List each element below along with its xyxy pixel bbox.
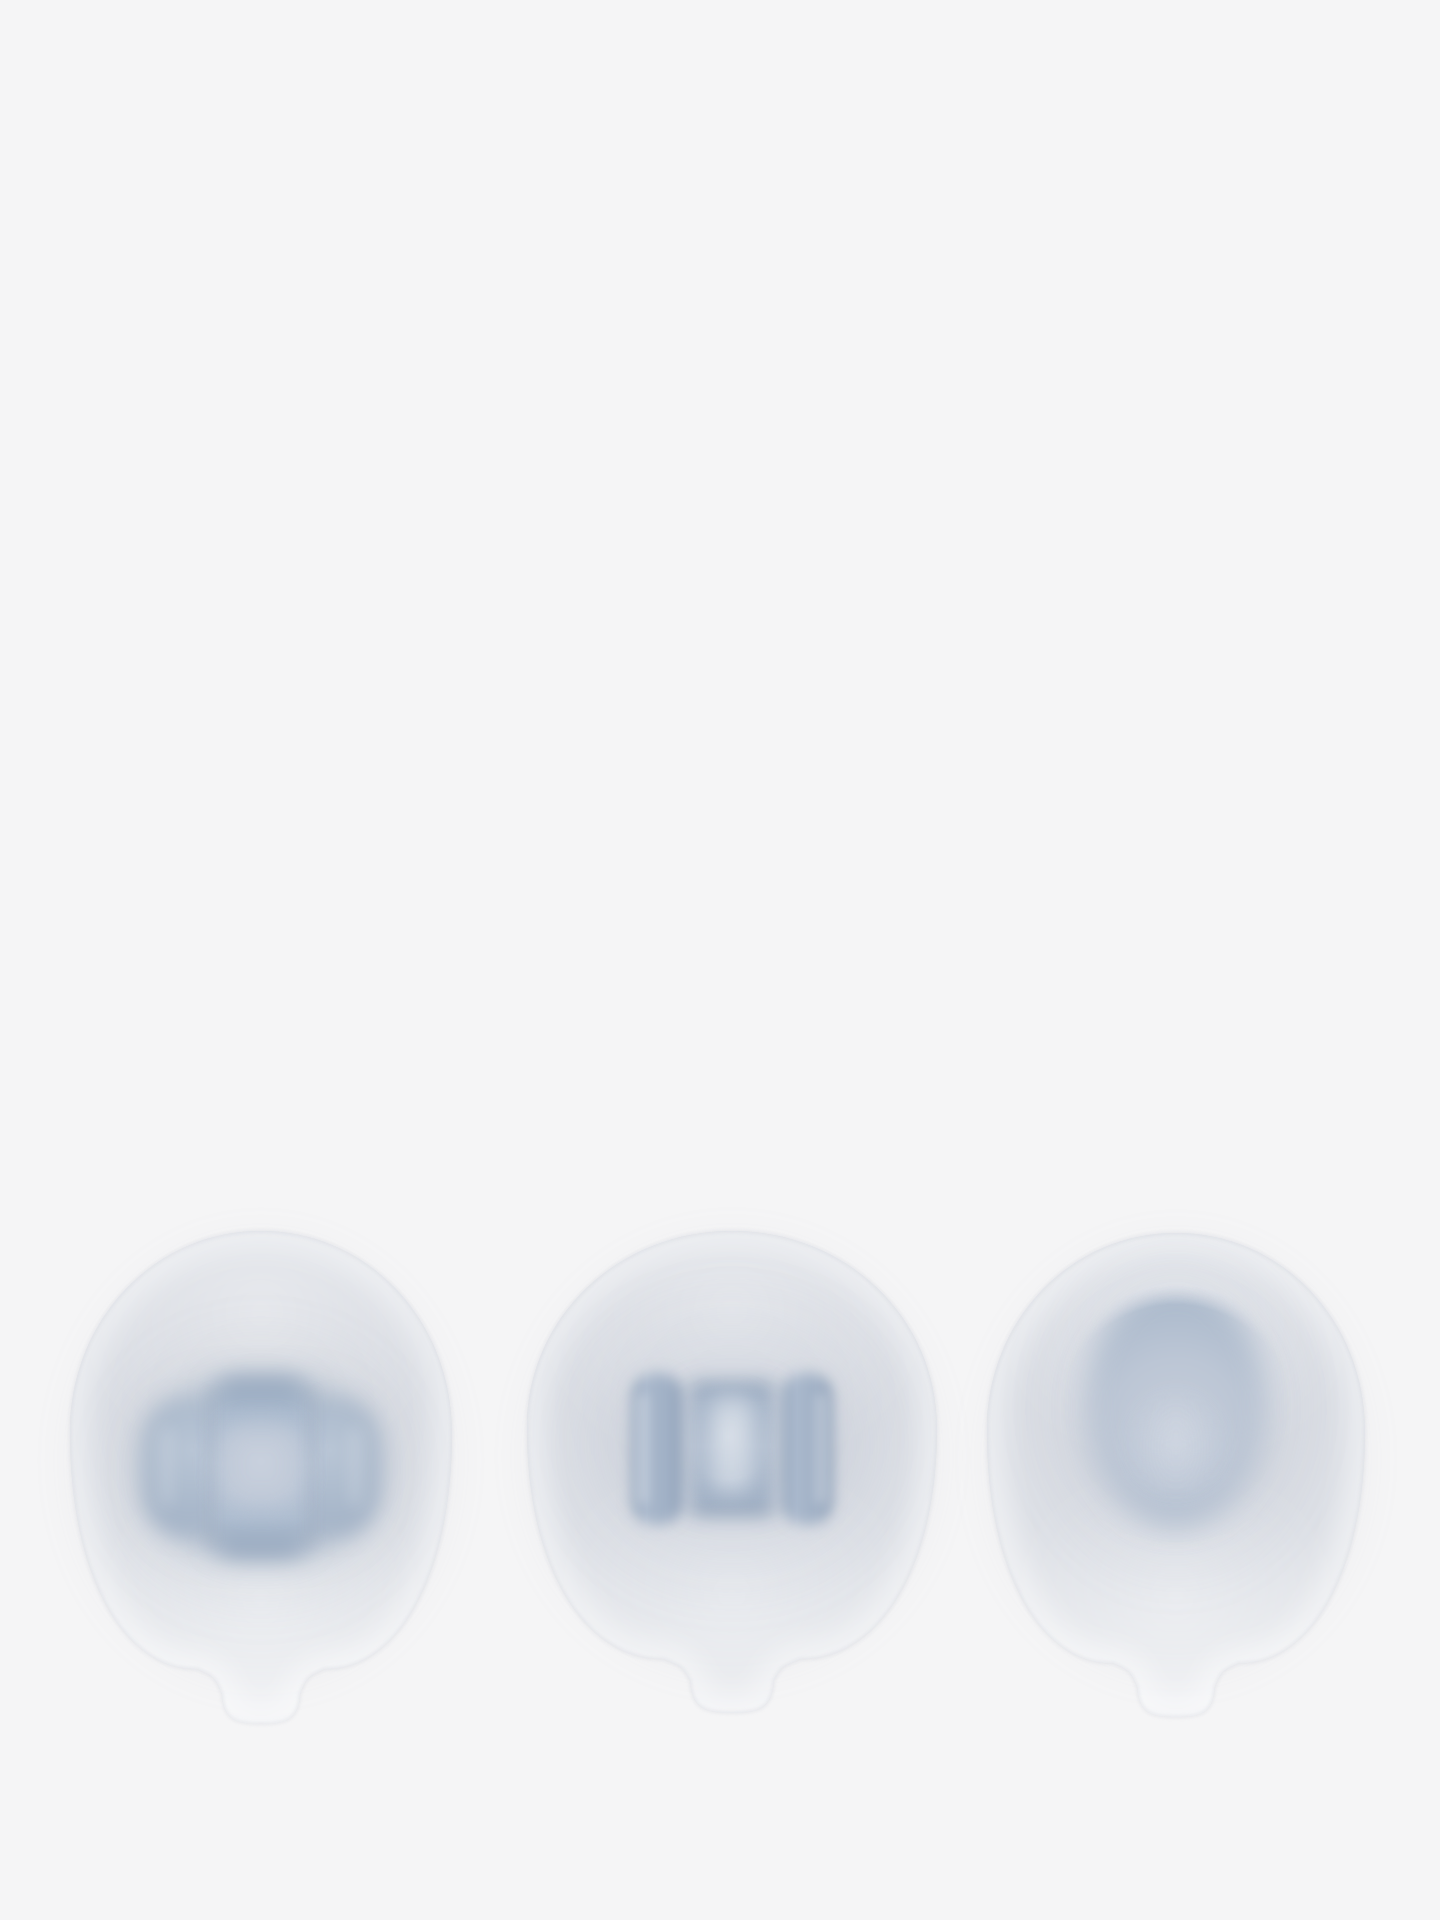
button[interactable]: Silicone ear tips, three sizes	[0, 0, 1440, 1920]
